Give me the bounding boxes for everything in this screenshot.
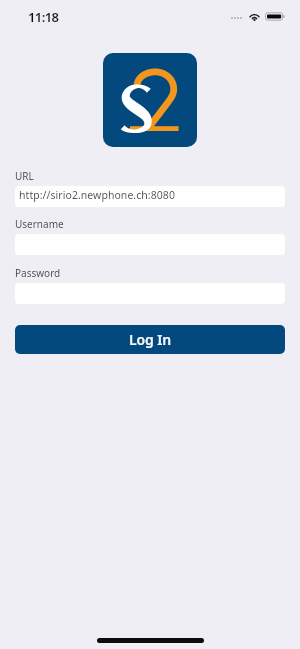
button[interactable]: Log In: [15, 325, 285, 354]
staticText: 11:18: [28, 8, 59, 26]
staticText: Password: [15, 266, 61, 280]
staticText: Log In: [129, 330, 172, 349]
staticText: URL: [15, 169, 34, 183]
staticText: Username: [15, 217, 64, 231]
staticText: http://sirio2.newphone.ch:8080: [19, 188, 175, 202]
button[interactable]: http://sirio2.newphone.ch:8080: [15, 186, 285, 207]
